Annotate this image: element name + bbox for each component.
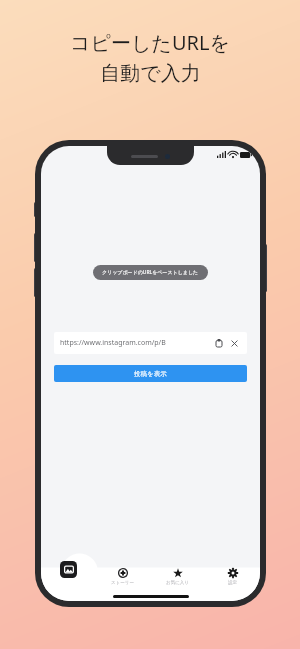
staticText: クリップボードのURLをペーストしました (102, 269, 199, 276)
staticText: https://www.instagram.com/p/B (60, 338, 212, 348)
button[interactable]: Paste from clipboard (212, 337, 225, 350)
button[interactable]: Photos (60, 561, 77, 578)
button[interactable]: 投稿を表示 (54, 365, 247, 382)
staticText: 投稿を表示 (134, 370, 167, 378)
staticText: 自動で入力 (100, 61, 201, 86)
button[interactable]: Clear (228, 337, 241, 350)
button[interactable]: 設定 (205, 567, 260, 586)
staticText: お気に入り (166, 580, 189, 586)
button[interactable]: お気に入り (150, 567, 205, 586)
staticText: 設定 (228, 580, 237, 586)
staticText: コピーしたURLを (70, 29, 230, 56)
staticText: ストーリー (111, 580, 134, 586)
button[interactable]: https://www.instagram.com/p/B (54, 332, 247, 354)
button[interactable]: クリップボードのURLをペーストしました (93, 265, 208, 280)
button[interactable]: ストーリー (95, 567, 150, 586)
